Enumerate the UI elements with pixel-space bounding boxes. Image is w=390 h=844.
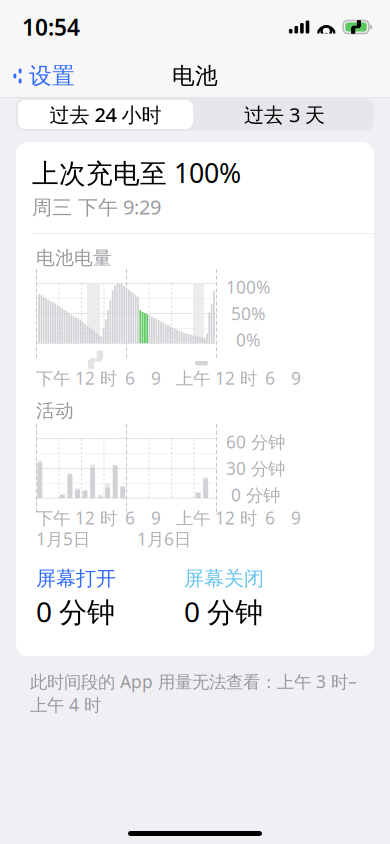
staticText: 过去 3 天 bbox=[244, 101, 325, 128]
button[interactable]: 设置 bbox=[0, 54, 75, 98]
staticText: 60 分钟 bbox=[226, 430, 285, 453]
staticText: 屏幕打开 bbox=[36, 566, 116, 591]
staticText: 上午 12 时 bbox=[176, 366, 257, 389]
staticText: 9 bbox=[291, 366, 301, 389]
staticText: 50% bbox=[231, 302, 265, 325]
staticText: 活动 bbox=[36, 399, 74, 422]
staticText: 屏幕关闭 bbox=[184, 566, 264, 591]
staticText: 9 bbox=[151, 506, 161, 529]
staticText: 9 bbox=[291, 506, 301, 529]
staticText: 10:54 bbox=[22, 12, 80, 42]
staticText: 6 bbox=[125, 366, 135, 389]
staticText: 下午 12 时 bbox=[36, 366, 117, 389]
staticText: 上次充电至 100% bbox=[32, 155, 241, 190]
button[interactable]: 过去 3 天 bbox=[195, 98, 374, 131]
staticText: 0 分钟 bbox=[36, 593, 115, 630]
staticText: 6 bbox=[125, 506, 135, 529]
staticText: 电池 bbox=[172, 62, 218, 90]
staticText: 100% bbox=[226, 275, 270, 298]
staticText: 下午 12 时 bbox=[36, 506, 117, 529]
staticText: 30 分钟 bbox=[226, 457, 285, 480]
staticText: 过去 24 小时 bbox=[49, 101, 161, 128]
staticText: 0 分钟 bbox=[231, 483, 280, 506]
staticText: 此时间段的 App 用量无法查看：上午 3 时–上午 4 时 bbox=[30, 670, 357, 716]
staticText: 1月6日 bbox=[137, 527, 191, 550]
staticText: 6 bbox=[265, 506, 275, 529]
staticText: 上午 12 时 bbox=[176, 506, 257, 529]
staticText: 周三 下午 9:29 bbox=[32, 193, 161, 220]
staticText: 9 bbox=[151, 366, 161, 389]
staticText: 设置 bbox=[29, 62, 75, 90]
staticText: 1月5日 bbox=[36, 527, 90, 550]
staticText: 6 bbox=[265, 366, 275, 389]
staticText: 电池电量 bbox=[36, 246, 112, 269]
staticText: 0 分钟 bbox=[184, 593, 263, 630]
button[interactable]: 过去 24 小时 bbox=[16, 98, 195, 131]
staticText: 0% bbox=[236, 328, 260, 351]
